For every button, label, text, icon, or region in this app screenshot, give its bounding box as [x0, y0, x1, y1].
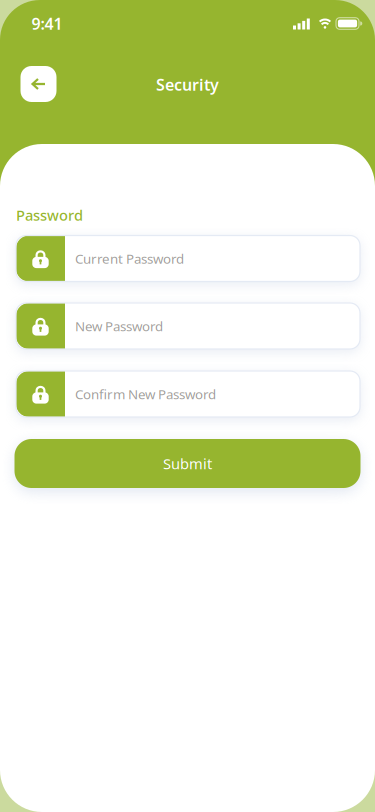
button[interactable]: Confirm New Password — [16, 371, 360, 417]
staticText: Current Password — [75, 250, 184, 267]
button[interactable]: Current Password — [16, 235, 360, 281]
button[interactable]: Back — [20, 66, 56, 102]
staticText: 9:41 — [31, 13, 62, 34]
staticText: Security — [156, 74, 219, 95]
staticText: Password — [16, 205, 83, 225]
button[interactable]: New Password — [16, 303, 360, 349]
staticText: New Password — [75, 317, 163, 335]
button[interactable]: Submit — [14, 439, 360, 488]
staticText: Submit — [163, 454, 212, 473]
staticText: Confirm New Password — [75, 385, 216, 403]
